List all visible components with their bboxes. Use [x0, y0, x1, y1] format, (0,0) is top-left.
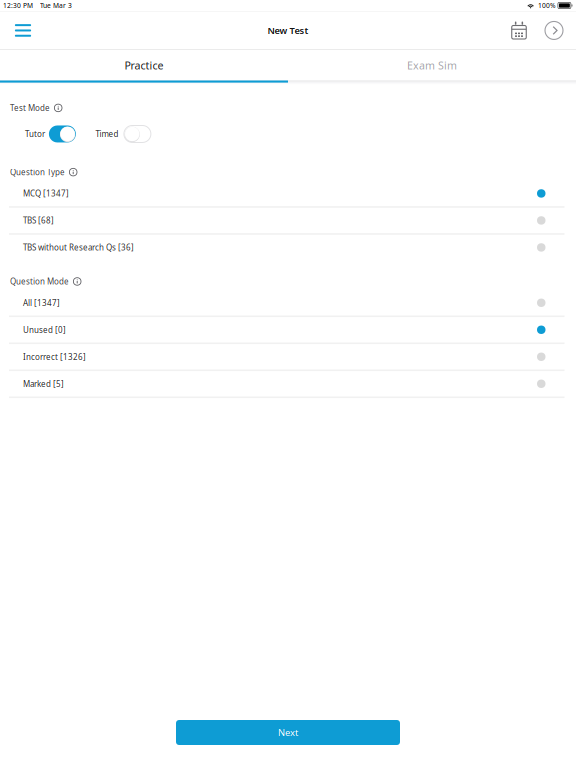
button[interactable]: Exam Sim [288, 50, 576, 80]
staticText: 12:30 PM [3, 1, 33, 10]
staticText: Question Type [10, 167, 65, 177]
button[interactable]: TBS [68] [0, 208, 576, 233]
button[interactable]: TBS without Research Qs [36] [0, 235, 576, 260]
staticText: Unused [0] [23, 324, 66, 335]
staticText: Tutor [25, 129, 45, 139]
button[interactable]: Continue [541, 15, 567, 45]
staticText: Exam Sim [407, 58, 457, 72]
staticText: Timed [96, 129, 119, 139]
staticText: Practice [124, 58, 163, 72]
button[interactable]: Practice [0, 50, 288, 80]
staticText: 100% [538, 1, 556, 10]
button[interactable]: Menu [8, 15, 38, 45]
button[interactable]: Unused [0] [0, 317, 576, 342]
staticText: TBS without Research Qs [36] [23, 242, 134, 253]
staticText: TBS [68] [23, 215, 54, 226]
staticText: Next [278, 726, 298, 739]
staticText: Incorrect [1326] [23, 351, 86, 362]
staticText: Tue Mar 3 [40, 1, 72, 10]
button[interactable]: MCQ [1347] [0, 181, 576, 206]
button[interactable]: Next [176, 720, 400, 745]
staticText: Test Mode [10, 103, 50, 113]
button[interactable]: Incorrect [1326] [0, 344, 576, 369]
staticText: MCQ [1347] [23, 188, 69, 199]
button[interactable]: Marked [5] [0, 371, 576, 396]
button[interactable]: All [1347] [0, 290, 576, 315]
staticText: All [1347] [23, 297, 60, 308]
staticText: Question Mode [10, 276, 69, 287]
staticText: Marked [5] [23, 378, 64, 389]
staticText: New Test [267, 24, 308, 37]
button[interactable]: Calendar [506, 15, 532, 45]
